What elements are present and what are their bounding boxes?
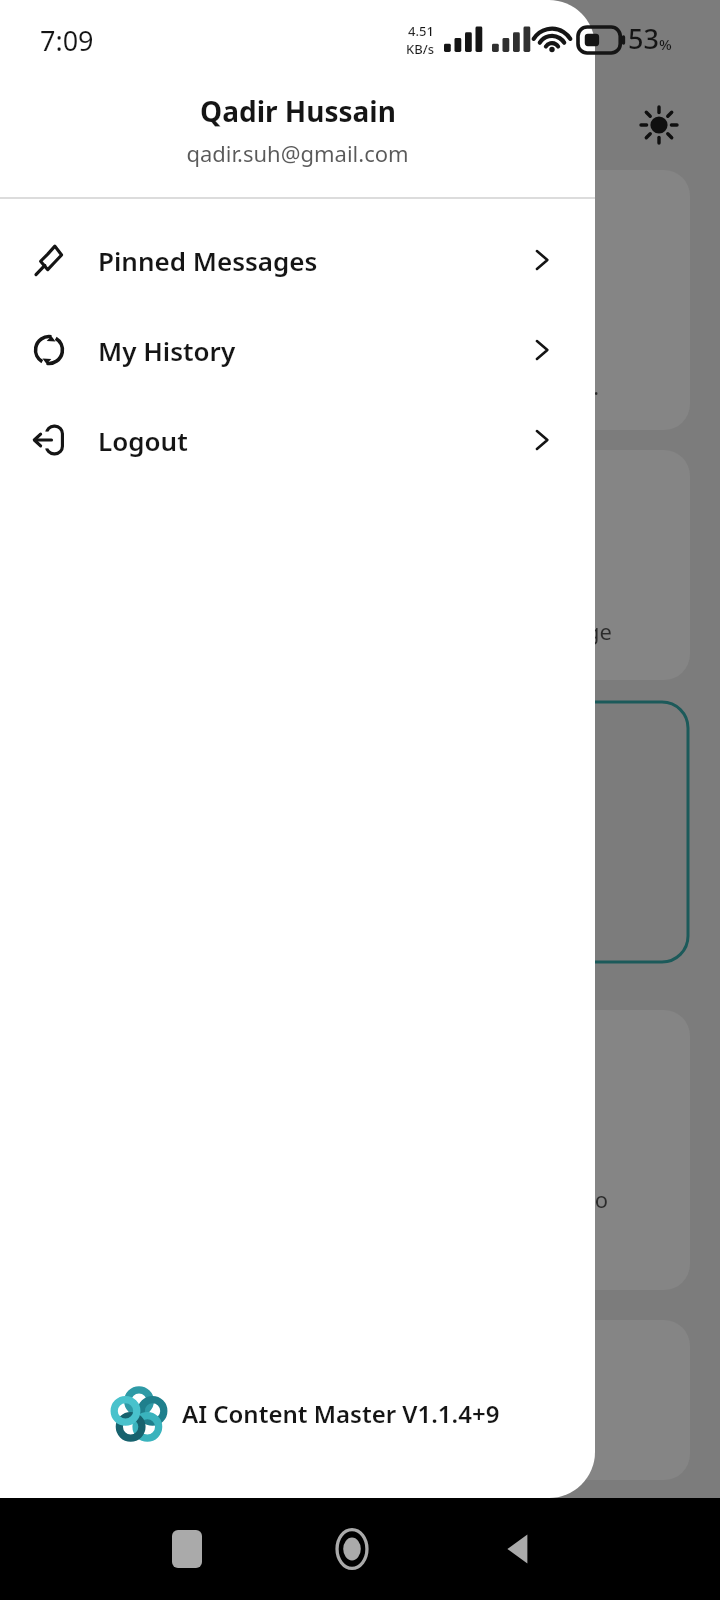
staticText: say. <box>560 371 600 401</box>
button[interactable]: My History <box>0 305 595 395</box>
button[interactable]: Recent apps <box>160 1522 214 1576</box>
staticText: Logout <box>98 423 188 458</box>
staticText: hoto <box>560 1184 609 1214</box>
staticText: Pinned Messages <box>98 243 318 278</box>
button[interactable]: Brightness <box>628 94 690 156</box>
button[interactable]: Back <box>490 1522 544 1576</box>
staticText: KB/s <box>406 40 435 58</box>
staticText: qadir.suh@gmail.com <box>186 138 409 168</box>
staticText: 53 <box>628 20 659 57</box>
staticText: My History <box>98 333 236 368</box>
button[interactable]: Qadir Hussain <box>0 92 595 168</box>
staticText: 4.51 <box>408 22 434 40</box>
button[interactable]: Home <box>325 1522 379 1576</box>
staticText: Qadir Hussain <box>200 92 396 130</box>
button[interactable]: Logout <box>0 395 595 485</box>
button[interactable]: AI Content Master V1.1.4+9 <box>0 1384 595 1498</box>
button[interactable]: Pinned Messages <box>0 215 595 305</box>
staticText: % <box>659 34 672 54</box>
staticText: AI Content Master V1.1.4+9 <box>182 1397 500 1430</box>
staticText: uage <box>560 616 612 646</box>
staticText: 7:09 <box>40 22 94 59</box>
